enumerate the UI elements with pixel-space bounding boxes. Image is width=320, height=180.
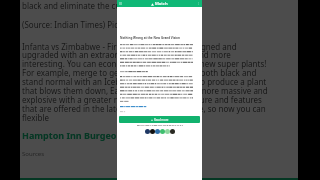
staticText: Nothing Wrong at the New Grand Vision xyxy=(120,36,180,40)
staticText: Read more xyxy=(154,118,169,122)
staticText: Infanta vs Zimbabwe - First test has bee… xyxy=(22,41,270,123)
button[interactable]: Share on Facebook xyxy=(145,129,150,134)
staticText: Match xyxy=(155,1,168,7)
button[interactable]: Share on WhatsApp xyxy=(160,129,165,134)
staticText: (Source: Indian Times) Pictures xyxy=(22,19,138,30)
button[interactable]: Menu xyxy=(117,0,124,7)
button[interactable]: Share on More xyxy=(170,129,175,134)
button[interactable]: Read more xyxy=(119,116,200,123)
button[interactable]: Share on Line xyxy=(165,129,170,134)
staticText: Sources xyxy=(22,150,45,158)
button[interactable]: Share on X xyxy=(150,129,155,134)
staticText: Hampton Inn Burgeoning xyxy=(22,129,137,141)
staticText: black and eliminate the cut of water xyxy=(22,0,157,11)
button[interactable]: More options xyxy=(195,0,202,7)
button[interactable]: Share on Twitter xyxy=(155,129,160,134)
